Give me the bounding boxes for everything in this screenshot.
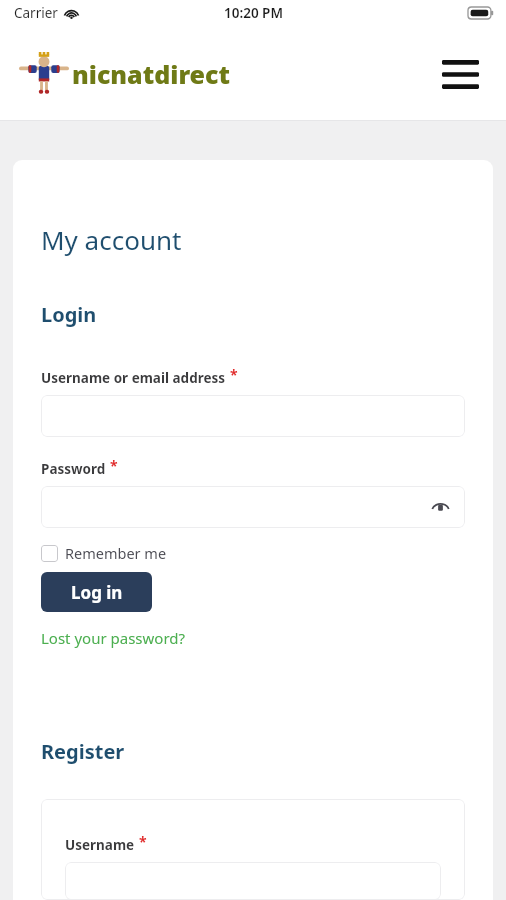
staticText: nicnatdirect (72, 57, 231, 91)
staticText: * (110, 456, 118, 475)
button[interactable]: Log in (41, 572, 152, 612)
staticText: Login (41, 301, 97, 328)
button[interactable] (41, 395, 465, 437)
staticText: Register (41, 738, 125, 765)
button[interactable]: Remember me (41, 543, 167, 563)
staticText: Remember me (65, 543, 167, 563)
staticText: Lost your password? (41, 628, 186, 648)
button[interactable]: Lost your password? (41, 628, 186, 648)
button[interactable]: Show password (41, 486, 465, 528)
button[interactable]: Show password (429, 496, 451, 518)
staticText: Username (65, 836, 135, 854)
staticText: Username or email address (41, 369, 226, 387)
button[interactable]: Open menu (438, 52, 482, 96)
staticText: * (139, 832, 147, 851)
staticText: * (230, 365, 238, 384)
button[interactable]: nicnatdirect (18, 52, 231, 96)
staticText: Password (41, 460, 106, 478)
staticText: My account (41, 222, 182, 257)
button[interactable] (65, 862, 441, 900)
staticText: Carrier (14, 4, 58, 22)
staticText: Log in (71, 581, 123, 604)
staticText: 10:20 PM (224, 4, 283, 22)
